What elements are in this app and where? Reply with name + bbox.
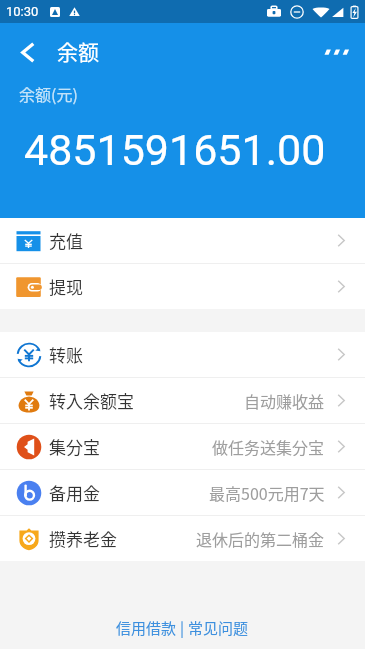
staticText: 备用金 bbox=[49, 480, 100, 505]
button[interactable]: 攒养老金 bbox=[0, 516, 365, 561]
staticText: 自动赚收益 bbox=[244, 389, 325, 412]
button[interactable]: 转入余额宝 bbox=[0, 378, 365, 423]
button[interactable]: 集分宝 bbox=[0, 424, 365, 469]
staticText: 信用借款 bbox=[116, 617, 177, 639]
staticText: 充值 bbox=[49, 228, 83, 253]
staticText: 集分宝 bbox=[49, 434, 100, 459]
staticText: 转账 bbox=[49, 342, 83, 367]
staticText: 做任务送集分宝 bbox=[212, 435, 325, 458]
button[interactable]: 提现 bbox=[0, 264, 365, 309]
staticText: | bbox=[180, 617, 185, 639]
staticText: 10:30 bbox=[6, 4, 39, 19]
staticText: 常见问题 bbox=[188, 617, 249, 639]
button[interactable]: 常见问题 bbox=[185, 613, 251, 643]
staticText: 提现 bbox=[49, 274, 83, 299]
button[interactable]: 备用金 bbox=[0, 470, 365, 515]
staticText: 4851591651.00 bbox=[24, 125, 326, 175]
staticText: 最高500元用7天 bbox=[209, 481, 325, 504]
staticText: 转入余额宝 bbox=[49, 388, 134, 413]
button[interactable]: Back bbox=[0, 23, 50, 75]
staticText: 退休后的第二桶金 bbox=[196, 527, 325, 550]
staticText: 余额(元) bbox=[19, 82, 78, 105]
staticText: 余额 bbox=[57, 36, 99, 66]
staticText: 攒养老金 bbox=[49, 526, 117, 551]
button[interactable]: 转账 bbox=[0, 332, 365, 377]
button[interactable]: More options bbox=[313, 23, 365, 75]
button[interactable]: 信用借款 bbox=[114, 613, 180, 643]
button[interactable]: 充值 bbox=[0, 218, 365, 263]
